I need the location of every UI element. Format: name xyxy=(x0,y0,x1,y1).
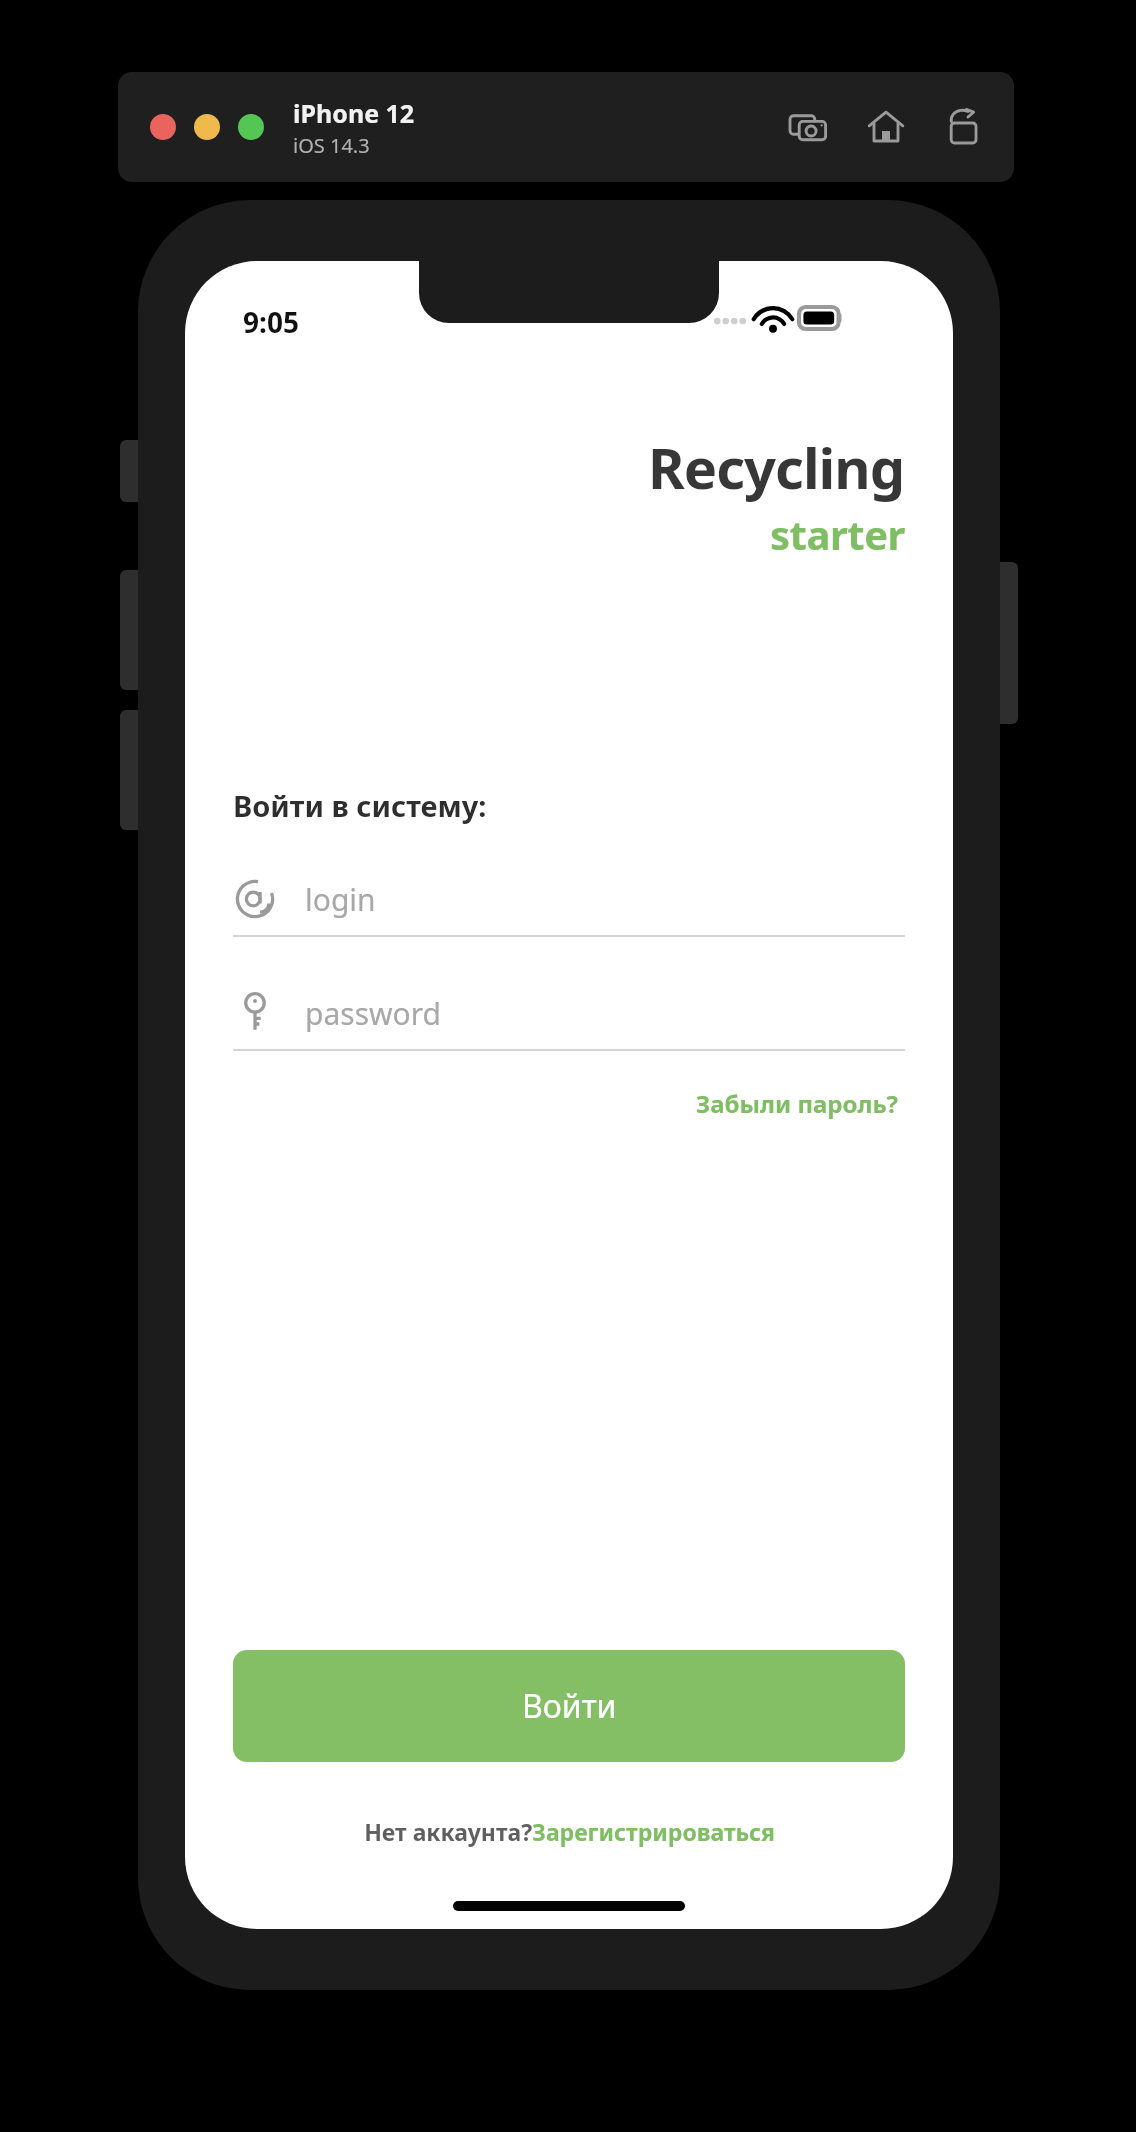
button[interactable] xyxy=(194,114,220,140)
staticText: iPhone 12 xyxy=(293,96,415,130)
staticText: Нет аккаунта?Зарегистрироваться xyxy=(364,1816,775,1847)
button[interactable]: Забыли пароль? xyxy=(690,1081,905,1126)
staticText: iOS 14.3 xyxy=(293,132,370,159)
staticText: 9:05 xyxy=(243,303,299,341)
button[interactable] xyxy=(238,114,264,140)
button[interactable]: Screenshot xyxy=(786,105,830,149)
button[interactable]: login xyxy=(233,863,905,937)
staticText: Войти в систему: xyxy=(233,786,487,825)
staticText: Забыли пароль? xyxy=(696,1087,899,1120)
button[interactable] xyxy=(150,114,176,140)
button[interactable]: Нет аккаунта?Зарегистрироваться xyxy=(360,1812,779,1851)
staticText: starter xyxy=(770,507,905,561)
button[interactable]: Home xyxy=(864,105,908,149)
button[interactable]: Rotate xyxy=(942,105,986,149)
staticText: Recycling xyxy=(648,429,905,505)
staticText: Войти xyxy=(522,1684,617,1728)
button[interactable]: Войти xyxy=(233,1650,905,1762)
button[interactable]: password xyxy=(233,977,905,1051)
staticText: password xyxy=(305,993,441,1034)
staticText: login xyxy=(305,879,376,920)
